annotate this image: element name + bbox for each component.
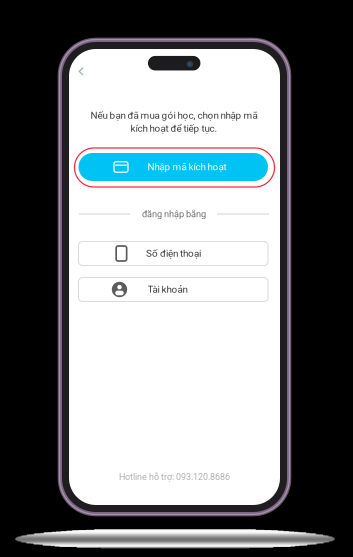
button[interactable]: Nhập mã kích hoạt xyxy=(78,153,268,181)
staticText: Tài khoản xyxy=(147,284,187,295)
button[interactable]: Back xyxy=(68,58,94,84)
button[interactable]: Tài khoản xyxy=(78,277,268,301)
staticText: Số điện thoại xyxy=(146,248,201,259)
staticText: kích hoạt để tiếp tục. xyxy=(130,123,217,134)
staticText: đăng nhập bằng xyxy=(142,209,206,219)
button[interactable]: Số điện thoại xyxy=(78,241,268,265)
staticText: Nhập mã kích hoạt xyxy=(147,161,226,173)
staticText: Hotline hỗ trợ: 093.120.8686 xyxy=(119,472,230,482)
staticText: Nếu bạn đã mua gói học, chọn nhập mã xyxy=(90,110,257,121)
